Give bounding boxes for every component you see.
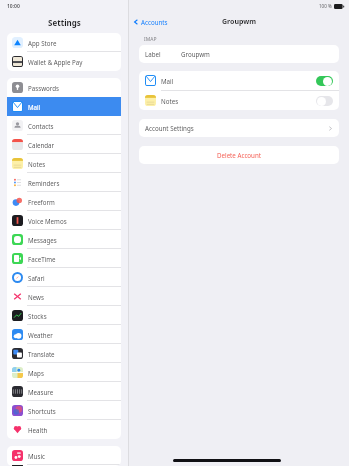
- button[interactable]: Notes: [7, 154, 121, 173]
- staticText: Mail: [28, 103, 41, 111]
- button[interactable]: News: [7, 287, 121, 306]
- button[interactable]: Safari: [7, 268, 121, 287]
- staticText: Wallet & Apple Pay: [28, 58, 83, 66]
- staticText: Calendar: [28, 141, 55, 149]
- button[interactable]: Mail: [145, 71, 333, 90]
- staticText: Safari: [28, 274, 45, 282]
- button[interactable]: Weather: [7, 325, 121, 344]
- staticText: Measure: [28, 388, 54, 396]
- staticText: Health: [28, 426, 48, 434]
- staticText: Accounts: [141, 18, 168, 26]
- staticText: News: [28, 293, 44, 301]
- button[interactable]: Contacts: [7, 116, 121, 135]
- staticText: 100 %: [319, 3, 332, 9]
- staticText: Delete Account: [217, 151, 261, 159]
- staticText: Contacts: [28, 122, 54, 130]
- staticText: FaceTime: [28, 255, 56, 263]
- staticText: Translate: [28, 350, 55, 358]
- button[interactable]: Music: [7, 446, 121, 465]
- button[interactable]: Label: [139, 45, 339, 63]
- staticText: Weather: [28, 331, 53, 339]
- staticText: 10:00: [7, 3, 20, 10]
- button[interactable]: Delete Account: [139, 146, 339, 164]
- button[interactable]: Calendar: [7, 135, 121, 154]
- button[interactable]: Freeform: [7, 192, 121, 211]
- button[interactable]: Voice Memos: [7, 211, 121, 230]
- button[interactable]: Notes: [145, 91, 333, 110]
- staticText: Voice Memos: [28, 217, 67, 225]
- staticText: Groupwm: [222, 17, 257, 27]
- staticText: Music: [28, 452, 45, 460]
- button[interactable]: Notes off: [316, 96, 333, 106]
- staticText: App Store: [28, 39, 57, 47]
- button[interactable]: Translate: [7, 344, 121, 363]
- staticText: Maps: [28, 369, 44, 377]
- staticText: Label: [145, 50, 161, 58]
- button[interactable]: Mail: [7, 97, 121, 116]
- button[interactable]: Health: [7, 420, 121, 439]
- button[interactable]: Accounts: [133, 18, 168, 26]
- staticText: Mail: [161, 77, 316, 85]
- staticText: Messages: [28, 236, 57, 244]
- staticText: Freeform: [28, 198, 55, 206]
- staticText: Groupwm: [181, 50, 210, 58]
- button[interactable]: Maps: [7, 363, 121, 382]
- staticText: Passwords: [28, 84, 59, 92]
- staticText: Reminders: [28, 179, 60, 187]
- button[interactable]: Mail on: [316, 76, 333, 86]
- staticText: Account Settings: [145, 124, 194, 132]
- button[interactable]: Messages: [7, 230, 121, 249]
- button[interactable]: Wallet & Apple Pay: [7, 52, 121, 71]
- button[interactable]: Passwords: [7, 78, 121, 97]
- staticText: Shortcuts: [28, 407, 56, 415]
- button[interactable]: FaceTime: [7, 249, 121, 268]
- button[interactable]: Measure: [7, 382, 121, 401]
- button[interactable]: Shortcuts: [7, 401, 121, 420]
- button[interactable]: Stocks: [7, 306, 121, 325]
- staticText: Settings: [48, 17, 81, 28]
- staticText: Notes: [28, 160, 46, 168]
- staticText: IMAP: [144, 36, 157, 43]
- button[interactable]: Reminders: [7, 173, 121, 192]
- staticText: Notes: [161, 97, 316, 105]
- button[interactable]: tv: [7, 465, 121, 466]
- staticText: Stocks: [28, 312, 47, 320]
- button[interactable]: Account Settings: [139, 119, 339, 137]
- button[interactable]: App Store: [7, 33, 121, 52]
